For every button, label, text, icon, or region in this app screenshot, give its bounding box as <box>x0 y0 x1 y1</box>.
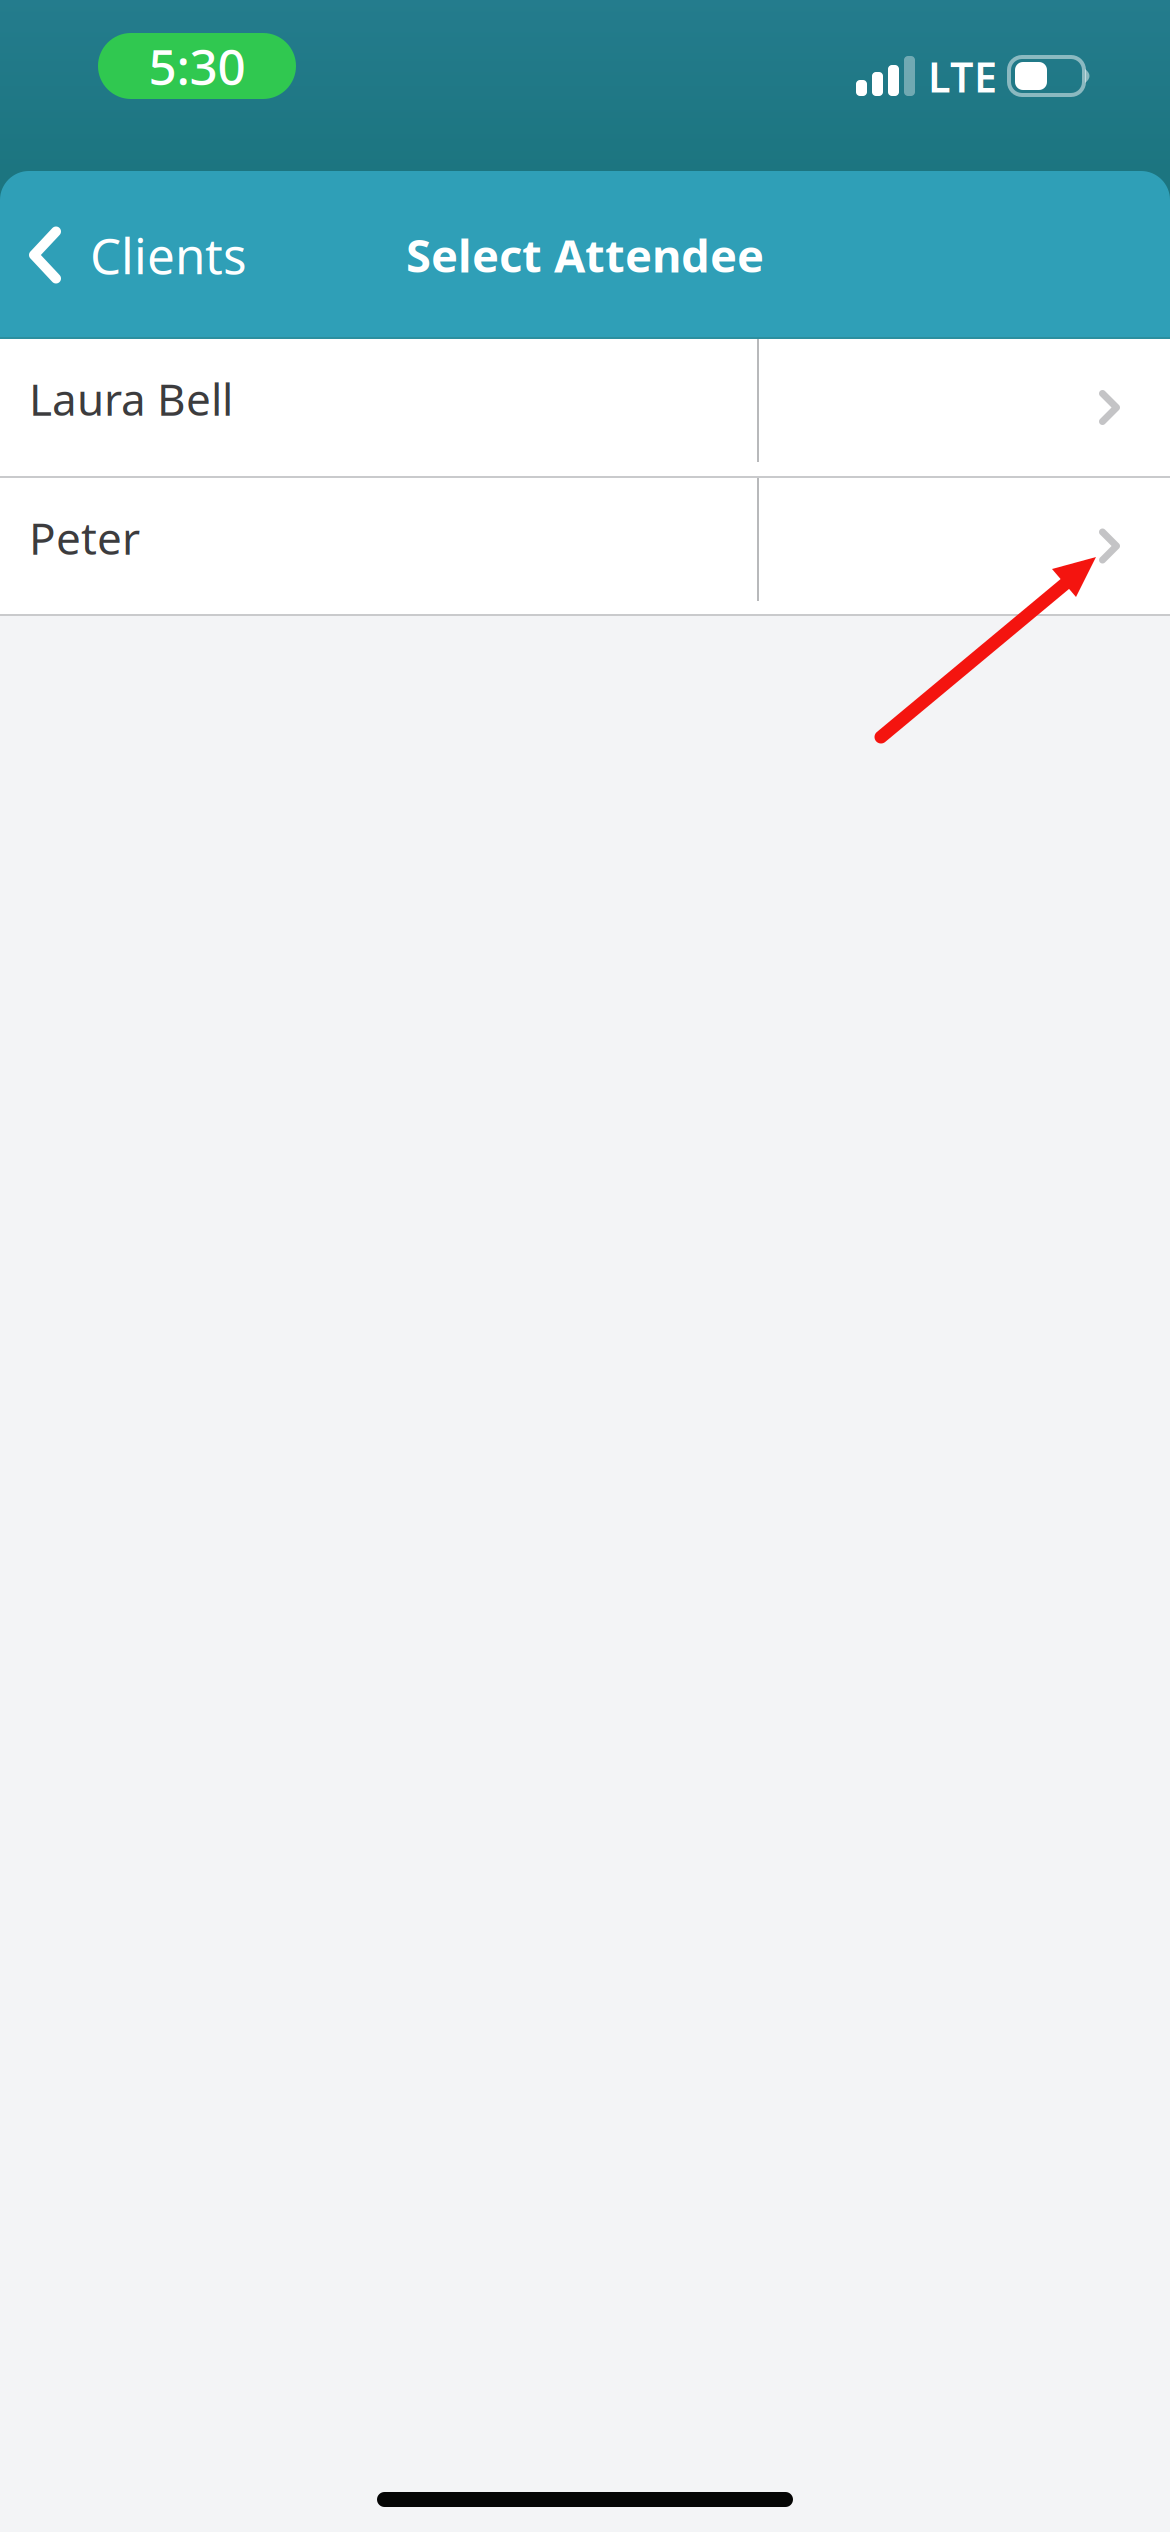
staticText: Select Attendee <box>406 225 764 285</box>
button[interactable]: Show details for Laura Bell <box>759 339 1170 476</box>
button[interactable]: Show details for Peter <box>759 478 1170 614</box>
staticText: Peter <box>29 509 140 567</box>
staticText: 5:30 <box>148 33 245 99</box>
button[interactable]: Laura Bell <box>0 339 759 476</box>
staticText: Clients <box>90 222 247 288</box>
button[interactable]: Peter <box>0 478 759 614</box>
staticText: LTE <box>928 49 997 104</box>
staticText: Laura Bell <box>29 370 233 428</box>
button[interactable]: Clients <box>0 171 271 339</box>
